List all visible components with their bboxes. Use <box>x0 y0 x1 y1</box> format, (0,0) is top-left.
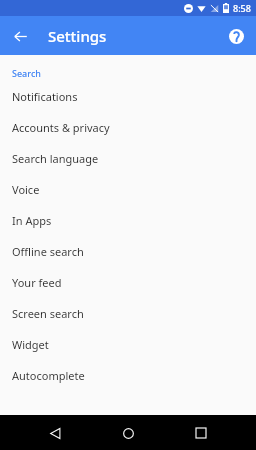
staticText: 8:58 <box>233 2 251 14</box>
staticText: Search <box>12 67 41 79</box>
button[interactable]: Accounts & privacy <box>0 112 256 143</box>
button[interactable]: In Apps <box>0 205 256 236</box>
staticText: Widget <box>12 337 49 352</box>
button[interactable]: Voice <box>0 174 256 205</box>
button[interactable]: Offline search <box>0 236 256 267</box>
staticText: Notifications <box>12 89 78 104</box>
button[interactable]: Your feed <box>0 267 256 298</box>
button[interactable]: Help <box>223 23 249 49</box>
staticText: Offline search <box>12 244 84 259</box>
staticText: Search language <box>12 151 99 166</box>
staticText: Screen search <box>12 306 84 321</box>
button[interactable]: Notifications <box>0 81 256 112</box>
staticText: Voice <box>12 182 40 197</box>
button[interactable]: Screen search <box>0 298 256 329</box>
button[interactable]: Back <box>7 23 33 49</box>
staticText: Accounts & privacy <box>12 120 110 135</box>
staticText: In Apps <box>12 213 52 228</box>
button[interactable]: Home <box>116 421 140 445</box>
button[interactable]: Widget <box>0 329 256 360</box>
staticText: Settings <box>48 26 107 46</box>
button[interactable]: Back <box>43 421 67 445</box>
button[interactable]: Autocomplete <box>0 360 256 391</box>
button[interactable]: Recent apps <box>189 421 213 445</box>
button[interactable]: Search language <box>0 143 256 174</box>
staticText: Autocomplete <box>12 368 85 383</box>
staticText: Your feed <box>12 275 62 290</box>
